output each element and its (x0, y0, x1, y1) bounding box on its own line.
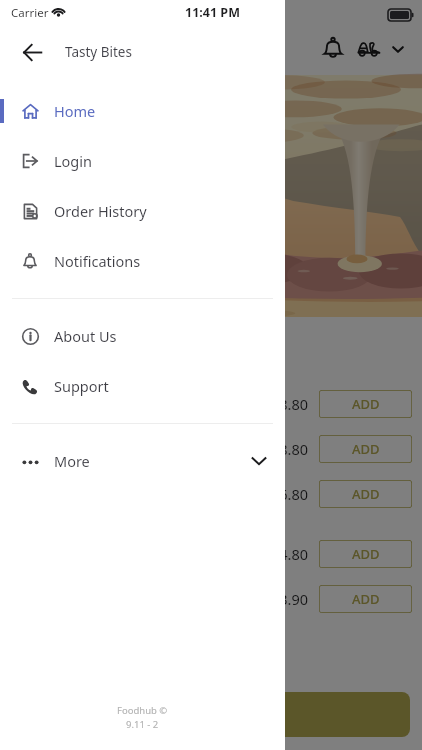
staticText: Carrier (11, 5, 49, 21)
button[interactable]: About Us (0, 311, 285, 361)
staticText: £8.80 (271, 439, 309, 459)
staticText: ADD (352, 590, 380, 608)
staticText: 9.11 - 2 (126, 718, 159, 731)
staticText: £8.80 (271, 394, 309, 414)
button[interactable]: ADD (319, 390, 412, 418)
staticText: ADD (352, 440, 380, 458)
button[interactable]: ADD (319, 480, 412, 508)
button[interactable]: ADD (319, 585, 412, 613)
button[interactable]: Home (0, 86, 285, 136)
staticText: ADD (352, 395, 380, 413)
staticText: About Us (54, 326, 117, 346)
button[interactable]: Expand (383, 34, 413, 64)
staticText: ADD (352, 545, 380, 563)
button[interactable]: ADD (319, 540, 412, 568)
button[interactable]: Notifications (0, 236, 285, 286)
button[interactable]: Order History (0, 186, 285, 236)
staticText: £6.80 (271, 484, 309, 504)
button[interactable]: Support (0, 361, 285, 411)
button[interactable]: Back (8, 28, 56, 76)
button[interactable] (12, 692, 410, 737)
staticText: Notifications (54, 251, 141, 271)
staticText: More (54, 451, 90, 471)
button[interactable]: Login (0, 136, 285, 186)
staticText: £3.90 (271, 589, 309, 609)
staticText: ADD (352, 485, 380, 503)
staticText: Foodhub © (117, 704, 168, 717)
staticText: 11:41 PM (185, 4, 240, 21)
button[interactable]: Notifications (313, 27, 353, 67)
staticText: Order History (54, 201, 147, 221)
button[interactable]: Delivery (349, 28, 389, 68)
staticText: Home (54, 101, 96, 121)
staticText: Tasty Bites (65, 43, 132, 61)
button[interactable]: More (0, 436, 285, 486)
staticText: Login (54, 151, 92, 171)
staticText: Support (54, 376, 109, 396)
staticText: £4.80 (271, 544, 309, 564)
button[interactable]: ADD (319, 435, 412, 463)
